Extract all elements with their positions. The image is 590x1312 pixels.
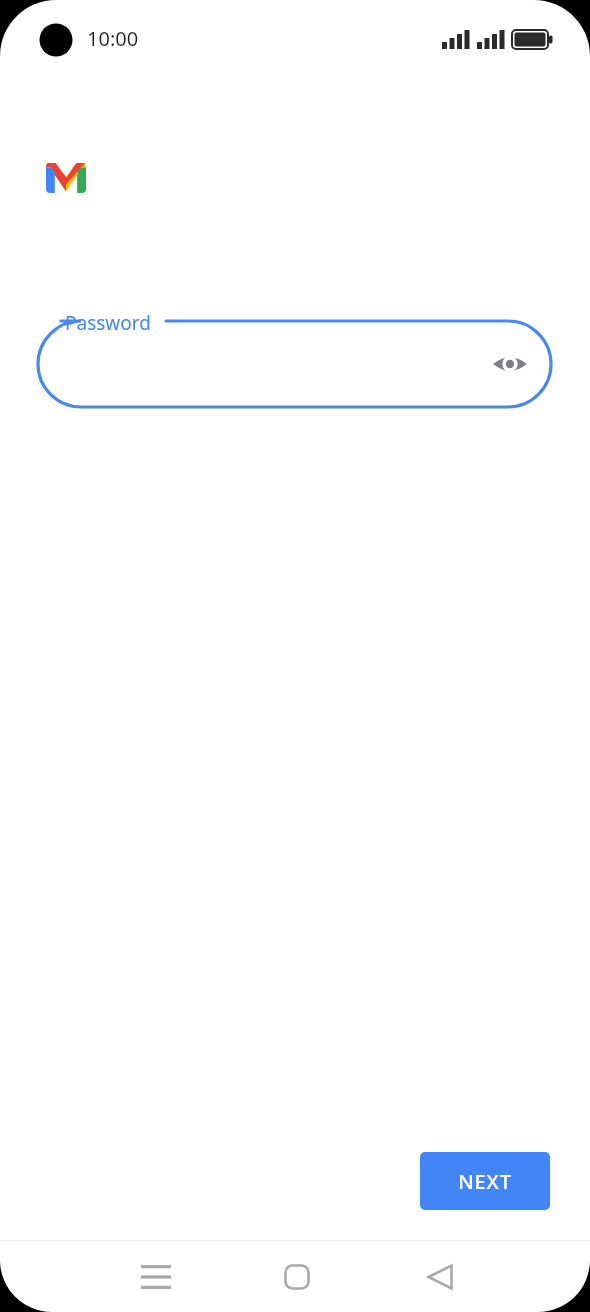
- staticText: 10:00: [87, 25, 139, 52]
- button[interactable]: Back: [406, 1243, 474, 1311]
- staticText: NEXT: [458, 1168, 512, 1195]
- button[interactable]: NEXT: [420, 1152, 550, 1210]
- button[interactable]: Password: [38, 321, 551, 407]
- button[interactable]: Show password: [487, 341, 533, 387]
- staticText: Password: [65, 310, 151, 336]
- button[interactable]: Recent apps: [122, 1243, 190, 1311]
- button[interactable]: Home: [263, 1243, 331, 1311]
